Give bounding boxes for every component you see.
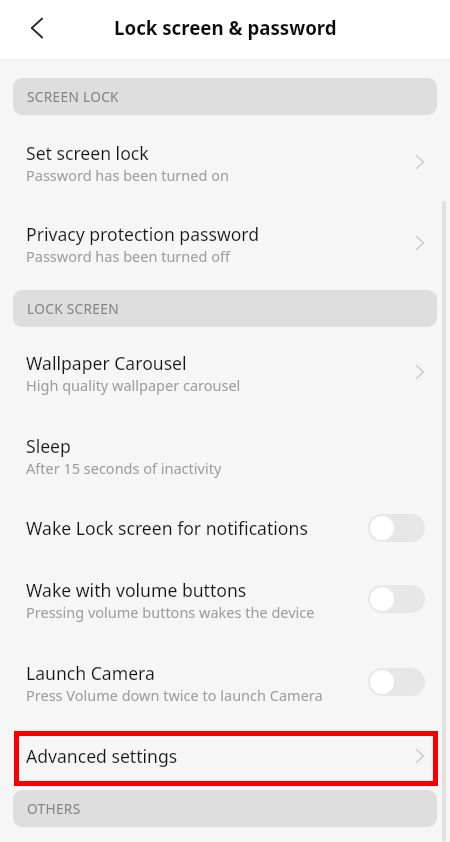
button[interactable]: Privacy protection password: [0, 208, 450, 290]
staticText: After 15 seconds of inactivity: [26, 458, 222, 478]
staticText: Set screen lock: [26, 141, 149, 165]
button[interactable]: Toggle switch: [368, 668, 425, 696]
staticText: High quality wallpaper carousel: [26, 375, 241, 395]
button[interactable]: Sleep: [0, 420, 450, 503]
button[interactable]: Set screen lock: [0, 127, 450, 209]
staticText: Advanced settings: [26, 744, 178, 768]
staticText: OTHERS: [27, 799, 81, 818]
button[interactable]: Wake with volume buttons: [0, 564, 450, 647]
button[interactable]: SCREEN LOCK: [13, 78, 437, 115]
staticText: Wake with volume buttons: [26, 578, 247, 602]
staticText: Password has been turned on: [26, 165, 229, 185]
button[interactable]: Wake Lock screen for notifications: [0, 502, 450, 564]
button[interactable]: LOCK SCREEN: [13, 290, 437, 327]
button[interactable]: Launch Camera: [0, 647, 450, 730]
button[interactable]: OTHERS: [13, 790, 437, 827]
staticText: LOCK SCREEN: [27, 299, 119, 318]
staticText: Sleep: [26, 434, 71, 458]
staticText: Lock screen & password: [114, 15, 337, 40]
staticText: Press Volume down twice to launch Camera: [26, 685, 323, 705]
staticText: Password has been turned off: [26, 246, 230, 266]
staticText: Pressing volume buttons wakes the device: [26, 602, 315, 622]
staticText: SCREEN LOCK: [27, 87, 119, 106]
staticText: Wallpaper Carousel: [26, 351, 187, 375]
button[interactable]: Back: [15, 6, 59, 50]
staticText: Wake Lock screen for notifications: [26, 516, 308, 540]
button[interactable]: Wallpaper Carousel: [0, 337, 450, 419]
button[interactable]: Toggle switch: [368, 514, 425, 542]
button[interactable]: Toggle switch: [368, 585, 425, 613]
button[interactable]: Advanced settings: [0, 730, 450, 790]
staticText: Privacy protection password: [26, 222, 260, 246]
staticText: Launch Camera: [26, 661, 155, 685]
